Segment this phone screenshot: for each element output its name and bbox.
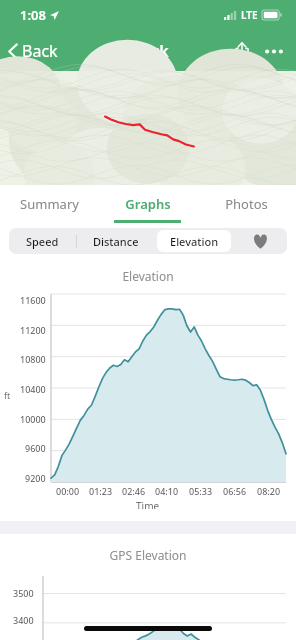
staticText: 10000	[20, 413, 46, 423]
staticText: ft	[4, 389, 11, 401]
button[interactable]: Distance	[79, 230, 153, 252]
staticText: Graphs	[125, 195, 171, 213]
button[interactable]: Summary	[0, 185, 98, 223]
staticText: Photos	[225, 195, 268, 213]
staticText: 3400	[13, 614, 34, 626]
staticText: GPS Elevation	[0, 547, 296, 563]
staticText: Elevation	[170, 234, 219, 249]
staticText: 06:56	[223, 485, 247, 497]
staticText: Track	[127, 40, 169, 62]
staticText: 10800	[20, 353, 46, 363]
staticText: Distance	[93, 234, 139, 249]
staticText: 9600	[25, 442, 46, 452]
staticText: 01:23	[89, 485, 113, 497]
staticText: 08:20	[257, 485, 281, 497]
staticText: LTE	[241, 8, 258, 22]
staticText: 9200	[25, 472, 46, 482]
staticText: Back	[22, 40, 58, 62]
button[interactable]: Back	[0, 34, 68, 68]
button[interactable]: Speed	[11, 230, 74, 252]
staticText: 02:46	[122, 485, 146, 497]
staticText: Speed	[26, 234, 59, 249]
button[interactable]: Elevation	[157, 230, 231, 252]
staticText: 11200	[20, 324, 46, 334]
staticText: 00:00	[56, 485, 80, 497]
staticText: 1:08	[20, 6, 46, 24]
staticText: Summary	[20, 195, 79, 213]
staticText: 3500	[13, 587, 34, 599]
staticText: Elevation	[0, 268, 296, 284]
staticText: 11600	[20, 294, 46, 304]
staticText: 10400	[20, 383, 46, 393]
button[interactable]: Photos	[197, 185, 296, 223]
staticText: 04:10	[155, 485, 179, 497]
button[interactable]: More options	[258, 35, 290, 67]
staticText: Time	[136, 499, 160, 509]
button[interactable]: Share	[226, 35, 258, 67]
button[interactable]: Graphs	[98, 185, 197, 223]
staticText: 05:33	[189, 485, 213, 497]
button[interactable]: Favorite	[233, 228, 287, 254]
